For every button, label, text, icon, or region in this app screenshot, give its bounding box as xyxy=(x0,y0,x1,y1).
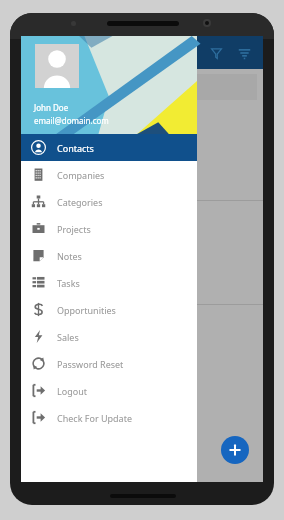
staticText: Password Reset xyxy=(57,358,124,370)
button[interactable]: Check For Update xyxy=(21,404,197,431)
button[interactable]: Notes xyxy=(21,242,197,269)
staticText: Notes xyxy=(57,250,82,262)
button[interactable]: Contacts xyxy=(21,134,197,161)
button[interactable]: Categories xyxy=(21,188,197,215)
staticText: Companies xyxy=(57,169,105,181)
staticText: John Doe xyxy=(34,102,69,113)
button[interactable]: Password Reset xyxy=(21,350,197,377)
staticText: Projects xyxy=(57,223,91,235)
button[interactable]: Sales xyxy=(21,323,197,350)
staticText: Check For Update xyxy=(57,412,132,424)
staticText: email@domain.com xyxy=(34,115,109,126)
button[interactable]: Logout xyxy=(21,377,197,404)
staticText: Tasks xyxy=(57,277,80,289)
button[interactable]: Companies xyxy=(21,161,197,188)
button[interactable]: Projects xyxy=(21,215,197,242)
button[interactable]: John Doe xyxy=(21,36,197,134)
button[interactable]: Filter xyxy=(203,40,229,66)
staticText: Sales xyxy=(57,331,79,343)
staticText: Opportunities xyxy=(57,304,116,316)
staticText: Contacts xyxy=(57,142,94,154)
button[interactable]: Opportunities xyxy=(21,296,197,323)
staticText: Categories xyxy=(57,196,103,208)
button[interactable]: Add xyxy=(221,436,249,464)
button[interactable]: Tasks xyxy=(21,269,197,296)
button[interactable]: Sort xyxy=(231,40,257,66)
staticText: Logout xyxy=(57,385,87,397)
